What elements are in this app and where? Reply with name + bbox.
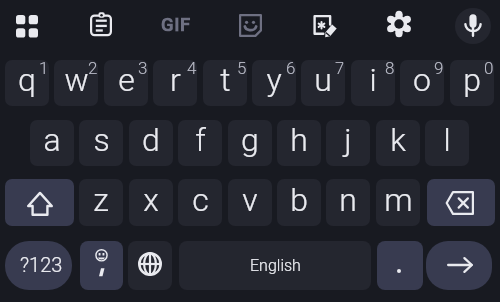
other: Clipboard (90, 12, 112, 36)
button[interactable]: Voice input (455, 8, 491, 44)
button[interactable]: GIF (155, 5, 197, 45)
button[interactable]: Symbols (5, 241, 72, 290)
button[interactable]: y (252, 60, 296, 106)
staticText: r (170, 61, 181, 99)
other: Apps (16, 15, 38, 38)
button[interactable]: a (30, 120, 74, 166)
button[interactable]: English (179, 241, 371, 290)
staticText: n (339, 181, 357, 219)
staticText: s (93, 121, 110, 159)
button[interactable]: r (153, 60, 197, 106)
staticText: p (463, 61, 481, 99)
staticText: o (413, 61, 431, 99)
staticText: 3 (138, 60, 148, 78)
staticText: h (290, 121, 308, 159)
staticText: 2 (88, 60, 98, 78)
button[interactable]: f (178, 120, 222, 166)
staticText: 8 (385, 60, 395, 78)
staticText: v (242, 181, 258, 219)
staticText: y (266, 61, 282, 99)
staticText: 0 (484, 60, 494, 78)
staticText: i (369, 61, 377, 99)
button[interactable]: w (54, 60, 98, 106)
staticText: c (192, 181, 209, 219)
staticText: q (18, 61, 36, 99)
staticText: w (64, 61, 89, 99)
button[interactable]: n (326, 179, 370, 226)
staticText: d (142, 121, 160, 159)
button[interactable]: t (203, 60, 247, 106)
staticText: u (314, 61, 332, 99)
staticText: k (390, 121, 406, 159)
button[interactable]: u (301, 60, 345, 106)
other: Create sticker (313, 14, 336, 38)
button[interactable]: c (178, 179, 222, 226)
staticText: m (384, 181, 413, 219)
button[interactable]: g (228, 120, 272, 166)
button[interactable]: Change language (128, 241, 172, 290)
staticText: x (143, 181, 159, 219)
other: Settings (387, 12, 411, 36)
staticText: l (443, 121, 451, 159)
button[interactable]: s (79, 120, 123, 166)
button[interactable]: q (5, 60, 49, 106)
staticText: e (118, 61, 135, 99)
staticText: GIF (161, 14, 191, 36)
button[interactable]: b (277, 179, 321, 226)
staticText: 9 (434, 60, 444, 78)
staticText: a (43, 121, 61, 159)
button[interactable]: i (351, 60, 395, 106)
staticText: b (290, 181, 308, 219)
button[interactable]: Enter (426, 241, 492, 290)
button[interactable]: h (277, 120, 321, 166)
staticText: j (344, 121, 352, 159)
staticText: 4 (187, 60, 197, 78)
button[interactable]: Shift (5, 179, 74, 226)
button[interactable]: e (104, 60, 148, 106)
button[interactable]: j (326, 120, 370, 166)
button[interactable]: z (79, 179, 123, 226)
staticText: g (241, 121, 259, 159)
button[interactable]: x (129, 179, 173, 226)
other: Stickers (239, 14, 262, 37)
staticText: English (250, 256, 301, 275)
staticText: 1 (39, 60, 49, 78)
staticText: ?123 (20, 253, 63, 276)
button[interactable]: p (450, 60, 494, 106)
button[interactable]: Emoji (80, 241, 123, 290)
staticText: 5 (237, 60, 247, 78)
staticText: t (220, 61, 231, 99)
button[interactable]: v (228, 179, 272, 226)
button[interactable]: Period (377, 241, 423, 290)
button[interactable]: o (400, 60, 444, 106)
button[interactable]: k (376, 120, 420, 166)
button[interactable]: d (129, 120, 173, 166)
staticText: f (195, 121, 206, 159)
staticText: z (93, 181, 109, 219)
staticText: 6 (286, 60, 296, 78)
button[interactable]: m (376, 179, 420, 226)
button[interactable]: Backspace (427, 179, 495, 226)
staticText: 7 (335, 60, 345, 78)
button[interactable]: l (425, 120, 469, 166)
